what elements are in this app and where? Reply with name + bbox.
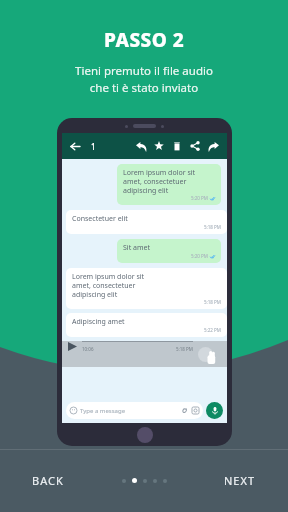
staticText: PASSO 2 [104,27,185,53]
staticText: Consectetuer elit [72,214,128,224]
button[interactable]: Consectetuer elit [66,210,227,234]
staticText: 5:22 PM [204,327,221,333]
staticText: 5:20 PM [191,253,208,259]
staticText: Adipiscing amet [72,317,125,327]
other: Attach [181,407,188,414]
staticText: 1 [91,141,96,152]
staticText: Sit amet [123,243,150,253]
staticText: 5:18 PM [204,299,221,305]
staticText: Tieni premuto il file audio che ti è sta… [75,63,213,96]
staticText: 5:20 PM [191,195,208,201]
staticText: 10:06 [82,346,94,352]
button[interactable]: Forward [204,137,222,155]
staticText: BACK [32,473,64,488]
staticText: NEXT [224,473,256,488]
staticText: Type a message [80,407,126,415]
button[interactable]: Star [150,137,168,155]
button[interactable]: Reply [132,137,150,155]
button[interactable]: Type a message [66,402,203,419]
staticText: Lorem ipsum dolor sit amet, consectetuer… [72,272,145,299]
button[interactable]: Sit amet [117,239,221,263]
button[interactable]: Play [68,342,77,351]
staticText: 5:18 PM [176,346,193,352]
button[interactable]: Back [67,138,83,154]
button[interactable]: Delete [168,137,186,155]
other: Camera [192,407,199,414]
staticText: Lorem ipsum dolor sit amet, consectetuer… [123,168,196,195]
staticText: 5:18 PM [204,224,221,230]
button[interactable]: Share [186,137,204,155]
button[interactable]: Adipiscing amet [66,313,227,337]
button[interactable]: NEXT [218,467,262,494]
button[interactable]: Lorem ipsum dolor sit amet, consectetuer… [66,268,227,309]
button[interactable]: Record voice message [206,402,223,419]
button[interactable]: BACK [26,467,70,494]
button[interactable]: Lorem ipsum dolor sit amet, consectetuer… [117,164,221,205]
